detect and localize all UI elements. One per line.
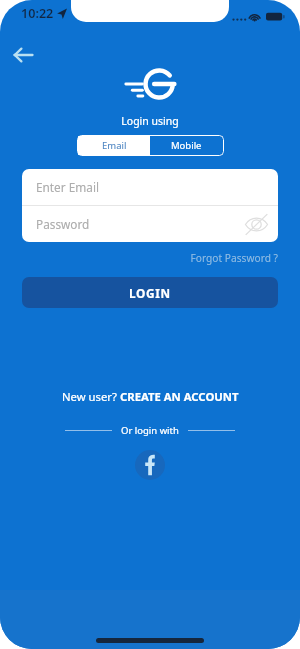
button[interactable]: Back [9,41,36,68]
button[interactable]: Password [36,206,268,242]
button[interactable]: Forgot Password ? [0,251,278,265]
button[interactable]: Login with Facebook [135,450,165,480]
staticText: New user? [62,389,120,404]
button[interactable]: CREATE AN ACCOUNT [120,389,239,404]
button[interactable]: Email [78,136,150,155]
staticText: Password [36,216,90,232]
staticText: Enter Email [36,179,99,195]
staticText: LOGIN [129,285,171,301]
staticText: 10:22 [21,5,54,22]
button[interactable]: Mobile [150,136,223,155]
button[interactable]: LOGIN [22,277,278,308]
staticText: Login using [0,114,300,128]
staticText: Or login with [121,424,179,437]
button[interactable]: Enter Email [36,169,264,205]
staticText: Mobile [171,139,202,152]
button[interactable]: Show password [244,212,268,236]
staticText: Email [102,139,127,152]
